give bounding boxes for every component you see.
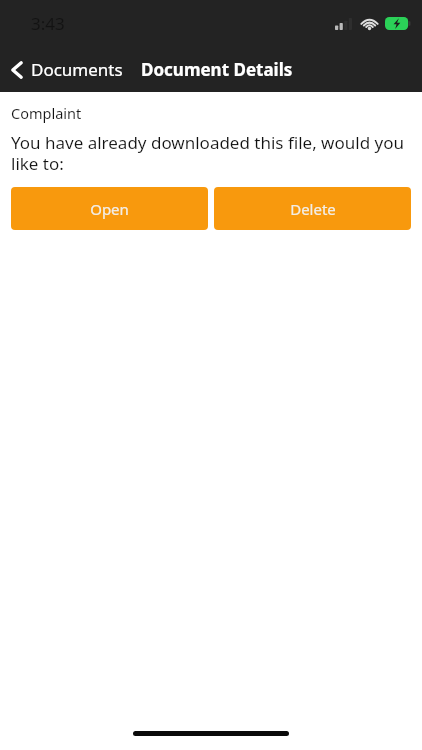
other: Battery charging <box>385 17 411 30</box>
button[interactable]: Delete <box>214 187 411 230</box>
staticText: You have already downloaded this file, w… <box>11 131 411 175</box>
staticText: Complaint <box>11 103 82 123</box>
staticText: Delete <box>290 199 336 219</box>
staticText: Open <box>90 199 129 219</box>
staticText: 3:43 <box>31 12 65 35</box>
button[interactable]: Open <box>11 187 208 230</box>
other: Wi-Fi <box>361 17 378 30</box>
staticText: Document Details <box>141 58 293 81</box>
staticText: Documents <box>31 58 123 81</box>
other: Cellular signal <box>335 18 352 30</box>
button[interactable]: Documents <box>0 52 129 87</box>
